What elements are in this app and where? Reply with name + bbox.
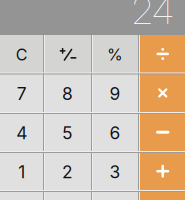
- staticText: 7: [17, 83, 27, 104]
- staticText: 1: [18, 161, 25, 182]
- button[interactable]: Percent: [91, 35, 138, 73]
- button[interactable]: 4: [0, 113, 43, 152]
- staticText: 5: [62, 122, 73, 143]
- button[interactable]: Multiply: [138, 73, 185, 113]
- button[interactable]: 6: [91, 113, 138, 152]
- button[interactable]: 0: [0, 191, 43, 200]
- button[interactable]: Add: [138, 152, 185, 191]
- staticText: 2: [62, 161, 73, 182]
- button[interactable]: 8: [43, 73, 91, 113]
- button[interactable]: Decimal point: [43, 191, 91, 200]
- button[interactable]: Clear: [0, 35, 43, 73]
- button[interactable]: Divide: [138, 35, 185, 73]
- button[interactable]: Subtract: [138, 113, 185, 152]
- button[interactable]: 7: [0, 73, 43, 113]
- button[interactable]: 3: [91, 152, 138, 191]
- button[interactable]: 2: [43, 152, 91, 191]
- staticText: 6: [109, 122, 120, 143]
- staticText: 8: [62, 83, 73, 104]
- button[interactable]: 1: [0, 152, 43, 191]
- staticText: 9: [109, 83, 120, 104]
- staticText: 3: [109, 161, 120, 182]
- button[interactable]: Plus minus: [43, 35, 91, 73]
- staticText: %: [107, 45, 123, 64]
- staticText: 4: [16, 122, 27, 143]
- button[interactable]: Equals: [138, 191, 185, 200]
- button[interactable]: 5: [43, 113, 91, 152]
- button[interactable]: Backspace: [91, 191, 138, 200]
- staticText: 24: [132, 0, 174, 33]
- button[interactable]: 9: [91, 73, 138, 113]
- staticText: C: [16, 45, 28, 64]
